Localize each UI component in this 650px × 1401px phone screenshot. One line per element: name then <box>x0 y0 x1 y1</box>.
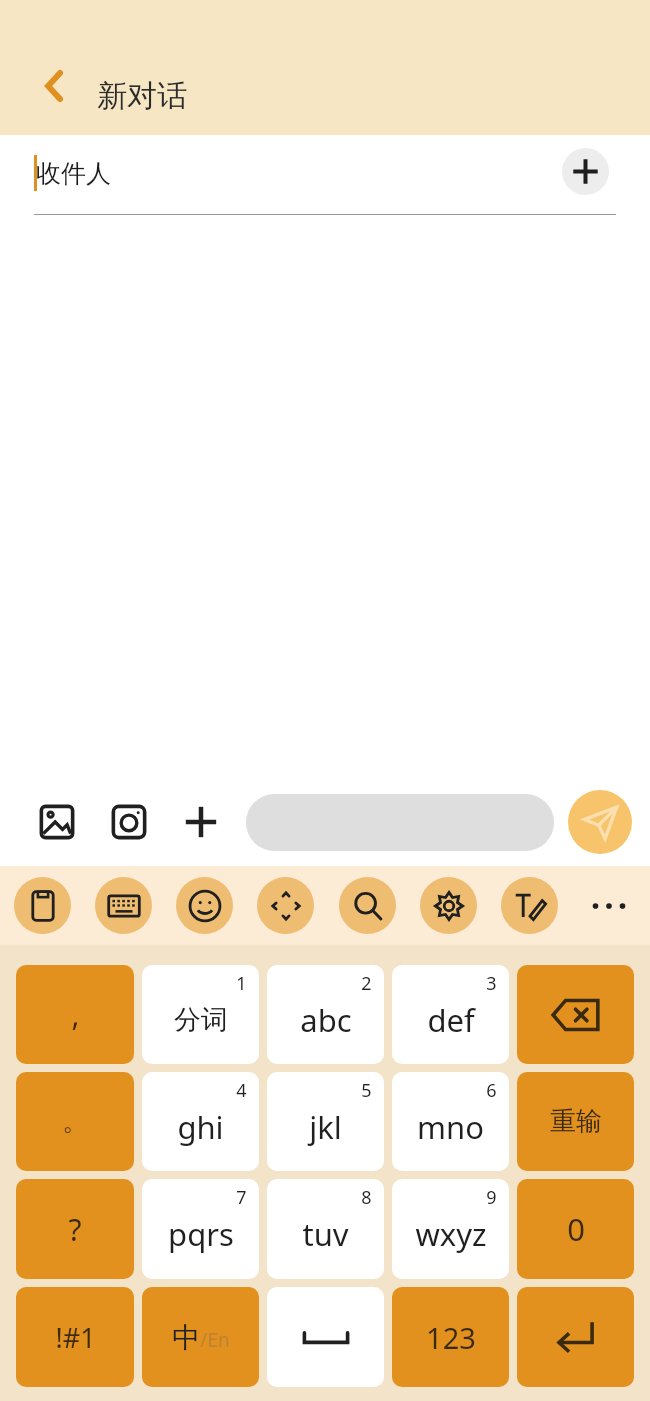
staticText: mno <box>417 1106 484 1148</box>
staticText: def <box>427 999 475 1041</box>
staticText: 7 <box>236 1185 247 1210</box>
staticText: 5 <box>361 1078 372 1103</box>
staticText: 重输 <box>550 1105 602 1138</box>
button[interactable]: Search <box>339 877 396 934</box>
button[interactable]: 0 <box>517 1179 634 1279</box>
staticText: 。 <box>62 1105 88 1138</box>
button[interactable]: Send <box>568 790 632 854</box>
button[interactable]: Clipboard <box>14 877 71 934</box>
button[interactable]: Move keyboard <box>257 877 314 934</box>
button[interactable]: mno <box>392 1072 509 1171</box>
button[interactable]: 中 <box>142 1287 259 1387</box>
staticText: 0 <box>567 1208 585 1250</box>
button[interactable] <box>246 794 554 851</box>
staticText: 123 <box>426 1318 476 1357</box>
button[interactable]: 。 <box>16 1072 134 1171</box>
button[interactable]: Camera <box>106 799 152 845</box>
button[interactable]: Enter <box>517 1287 634 1387</box>
staticText: jkl <box>309 1106 342 1148</box>
button[interactable]: More options <box>178 799 224 845</box>
staticText: 中 <box>172 1320 200 1355</box>
staticText: 4 <box>236 1078 247 1103</box>
button[interactable]: Keyboard <box>95 877 152 934</box>
button[interactable]: pqrs <box>142 1179 259 1279</box>
button[interactable]: wxyz <box>392 1179 509 1279</box>
staticText: 8 <box>361 1185 372 1210</box>
button[interactable]: ghi <box>142 1072 259 1171</box>
button[interactable]: jkl <box>267 1072 384 1171</box>
button[interactable]: Backspace <box>517 965 634 1064</box>
staticText: 新对话 <box>97 77 187 115</box>
button[interactable]: More <box>582 879 636 933</box>
button[interactable]: Gallery <box>34 799 80 845</box>
staticText: tuv <box>302 1213 349 1255</box>
staticText: 2 <box>361 971 372 996</box>
staticText: wxyz <box>415 1213 487 1255</box>
staticText: 分词 <box>174 1003 228 1037</box>
staticText: pqrs <box>168 1213 234 1255</box>
button[interactable]: 123 <box>392 1287 509 1387</box>
staticText: ghi <box>177 1106 224 1148</box>
button[interactable]: , <box>16 965 134 1064</box>
staticText: , <box>71 994 80 1035</box>
staticText: abc <box>300 999 352 1041</box>
staticText: /En <box>200 1327 230 1353</box>
button[interactable]: !#1 <box>16 1287 134 1387</box>
staticText: 6 <box>486 1078 497 1103</box>
button[interactable]: tuv <box>267 1179 384 1279</box>
button[interactable]: def <box>392 965 509 1064</box>
staticText: 收件人 <box>36 158 111 189</box>
button[interactable]: 重输 <box>517 1072 634 1171</box>
staticText: 1 <box>236 971 247 996</box>
button[interactable]: 分词 <box>142 965 259 1064</box>
button[interactable]: Settings <box>420 877 477 934</box>
button[interactable]: ? <box>16 1179 134 1279</box>
button[interactable]: Add recipient <box>562 148 609 195</box>
staticText: ? <box>68 1209 82 1250</box>
button[interactable]: Text edit <box>501 877 558 934</box>
button[interactable]: Space <box>267 1287 384 1387</box>
button[interactable]: Back <box>26 59 80 113</box>
staticText: 3 <box>486 971 497 996</box>
button[interactable]: Emoji <box>176 877 233 934</box>
staticText: 9 <box>486 1185 497 1210</box>
button[interactable]: abc <box>267 965 384 1064</box>
staticText: !#1 <box>55 1319 96 1356</box>
